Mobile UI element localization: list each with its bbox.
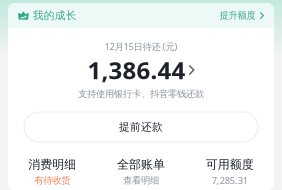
staticText: 支持使用银行卡、抖音零钱还款 [78,88,204,100]
button[interactable]: 提升额度 [220,10,264,20]
button[interactable]: 我的成长 [18,10,77,20]
staticText: 12月15日待还 (元) [104,40,177,53]
staticText: 查看明细 [123,175,159,186]
button[interactable]: 提前还款 [24,112,258,142]
button[interactable]: 可用额度 [185,159,274,185]
staticText: 有待收货 [34,175,70,186]
staticText: 提前还款 [119,120,163,133]
button[interactable]: 消费明细 [8,159,97,185]
staticText: 1,386.44 [87,54,185,86]
staticText: 我的成长 [33,9,77,22]
staticText: 消费明细 [28,157,76,172]
staticText: 可用额度 [206,157,254,172]
button[interactable]: 1,386.44 [87,60,194,80]
staticText: 提升额度 [220,10,256,21]
staticText: 7,285.31 [212,174,248,187]
button[interactable]: 全部账单 [97,159,185,185]
staticText: 全部账单 [117,157,165,172]
